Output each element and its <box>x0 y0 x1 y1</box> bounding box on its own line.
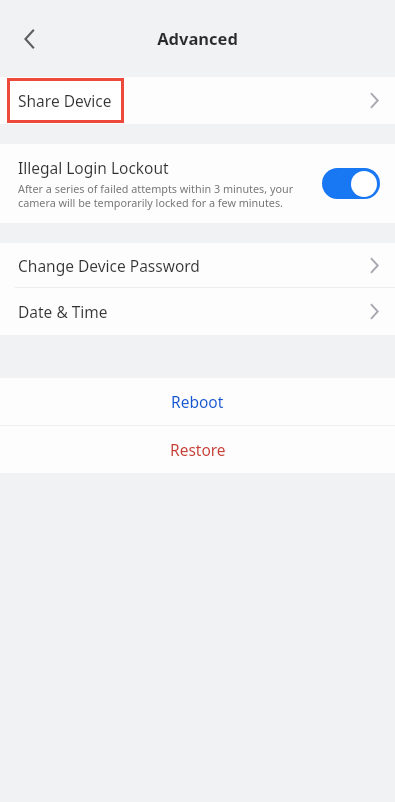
button[interactable]: Back <box>8 17 52 61</box>
staticText: Reboot <box>171 391 224 412</box>
staticText: Advanced <box>157 27 238 49</box>
staticText: Restore <box>170 439 226 460</box>
button[interactable]: Reboot <box>0 378 395 425</box>
staticText: Share Device <box>18 90 112 111</box>
staticText: After a series of failed attempts within… <box>18 181 294 210</box>
staticText: Date & Time <box>18 301 108 322</box>
staticText: Illegal Login Lockout <box>18 157 169 178</box>
button[interactable]: Illegal Login Lockout toggle <box>322 168 380 199</box>
button[interactable]: Illegal Login Lockout <box>0 144 395 223</box>
staticText: Change Device Password <box>18 255 200 276</box>
button[interactable]: Change Device Password <box>0 243 395 287</box>
button[interactable] <box>0 77 395 124</box>
button[interactable]: Restore <box>0 426 395 473</box>
button[interactable]: Date & Time <box>0 288 395 335</box>
